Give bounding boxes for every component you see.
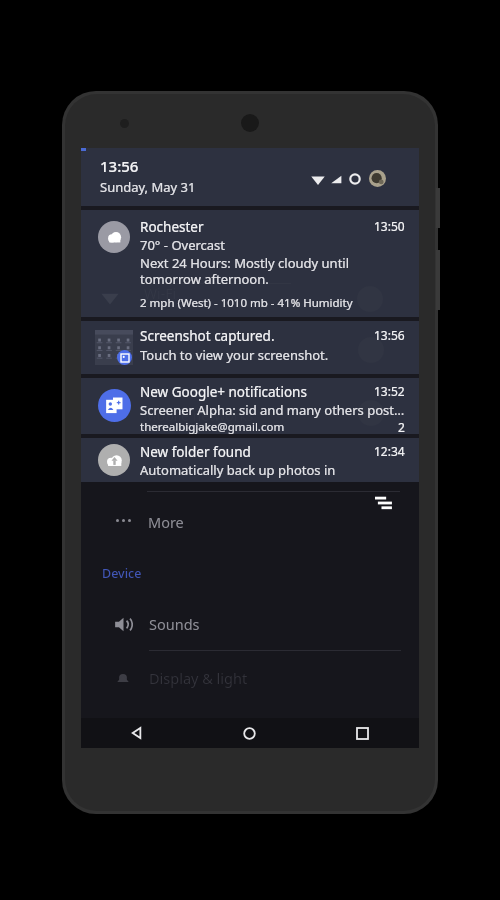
button[interactable]: Mobile networks <box>81 378 419 434</box>
staticText: 13:56 <box>100 156 139 176</box>
staticText: 2 mph (West) - 1010 mb - 41% Humidity <box>140 295 353 311</box>
button[interactable]: Recent apps <box>306 718 419 748</box>
staticText: Sounds <box>149 614 200 634</box>
button[interactable]: Bluetooth <box>81 321 419 374</box>
staticText: 2 <box>398 419 405 435</box>
staticText: Next 24 Hours: Mostly cloudy until tomor… <box>140 254 405 287</box>
staticText: New Google+ notifications <box>140 383 374 401</box>
staticText: 12:34 <box>374 443 405 459</box>
button[interactable]: New folder found <box>81 438 419 482</box>
staticText: Touch to view your screenshot. <box>140 346 329 364</box>
staticText: Rochester <box>140 218 374 236</box>
button[interactable]: Back <box>81 718 193 748</box>
staticText: Sunday, May 31 <box>100 178 196 196</box>
staticText: Device <box>102 565 142 582</box>
staticText: More <box>148 512 184 532</box>
button[interactable]: Home <box>193 718 306 748</box>
staticText: Display & light <box>149 668 248 688</box>
staticText: 13:56 <box>374 327 405 343</box>
staticText: 13:52 <box>374 383 405 399</box>
staticText: Mobile networks <box>144 406 254 425</box>
button[interactable]: Wi-Fi <box>81 210 419 317</box>
staticText: 70° - Overcast <box>140 236 226 254</box>
staticText: Screenshot captured. <box>140 327 374 345</box>
staticText: Automatically back up photos in previewi… <box>140 461 405 479</box>
staticText: New folder found <box>140 443 374 461</box>
staticText: Wi-Fi <box>144 284 177 303</box>
staticText: 13:50 <box>374 218 405 234</box>
staticText: therealbigjake@gmail.com <box>140 419 398 435</box>
staticText: Screener Alpha: sid and many others post… <box>140 401 405 419</box>
staticText: Bluetooth <box>144 345 209 364</box>
